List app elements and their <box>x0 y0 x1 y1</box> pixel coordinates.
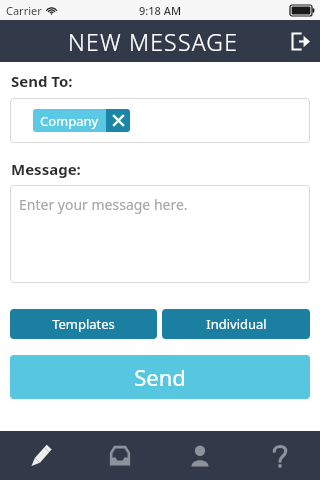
button[interactable]: Log out <box>280 21 320 61</box>
button[interactable]: Contacts <box>160 431 240 480</box>
staticText: Send To: <box>11 71 73 91</box>
staticText: Send <box>134 362 186 392</box>
staticText: Templates <box>52 315 115 333</box>
staticText: Message: <box>11 159 81 179</box>
staticText: Company <box>40 112 99 130</box>
staticText: Carrier <box>6 3 42 18</box>
button[interactable]: Company <box>10 98 310 143</box>
staticText: Individual <box>206 315 267 333</box>
staticText: NEW MESSAGE <box>68 26 239 57</box>
button[interactable]: Send <box>10 355 310 399</box>
button[interactable]: Individual <box>162 309 310 339</box>
button[interactable]: Inbox <box>80 431 160 480</box>
button[interactable]: Help <box>240 431 320 480</box>
staticText: Enter your message here. <box>19 195 188 214</box>
staticText: 9:18 AM <box>139 3 182 18</box>
button[interactable]: Templates <box>10 309 157 339</box>
button[interactable]: Compose message <box>0 431 80 480</box>
button[interactable]: Enter your message here. <box>10 185 310 283</box>
button[interactable]: Remove recipient <box>106 109 130 132</box>
button[interactable]: Company <box>33 109 130 132</box>
